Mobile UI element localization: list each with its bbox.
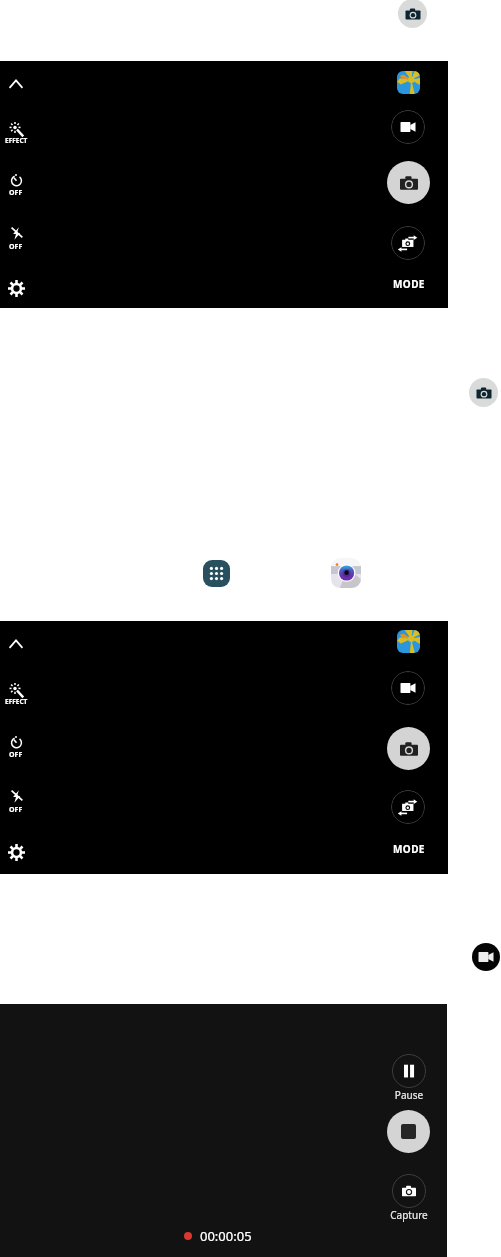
button[interactable]: Gallery [397, 630, 420, 653]
button[interactable]: Expand [3, 631, 29, 657]
button[interactable]: Flash off [9, 790, 23, 815]
button[interactable]: Switch camera [391, 790, 425, 824]
button[interactable]: Record video [391, 671, 425, 705]
button[interactable]: MODE [387, 839, 431, 859]
button[interactable]: Timer off [9, 735, 23, 760]
button[interactable]: Record video [472, 943, 500, 971]
staticText: MODE [393, 842, 425, 856]
staticText: MODE [393, 277, 425, 291]
button[interactable]: Take photo [387, 161, 430, 204]
button[interactable]: Pause [379, 1041, 439, 1101]
button[interactable]: Expand [3, 71, 29, 97]
button[interactable]: Effect [5, 122, 28, 146]
button[interactable]: Settings [3, 275, 29, 301]
button[interactable]: Switch camera [391, 226, 425, 260]
button[interactable]: Timer off [9, 173, 23, 198]
button[interactable]: Apps [203, 560, 230, 587]
staticText: 00:00:05 [200, 1227, 252, 1245]
button[interactable]: Capture [379, 1161, 439, 1221]
staticText: Capture [379, 1208, 439, 1222]
staticText: OFF [9, 188, 23, 198]
staticText: OFF [9, 242, 23, 252]
button[interactable]: Stop recording [387, 1110, 430, 1153]
button[interactable]: Settings [3, 839, 29, 865]
button[interactable]: Flash off [9, 227, 23, 252]
button[interactable]: Gallery [397, 71, 420, 94]
button[interactable]: MODE [387, 274, 431, 294]
staticText: OFF [9, 805, 23, 815]
staticText: Pause [379, 1088, 439, 1102]
staticText: EFFECT [5, 136, 28, 145]
button[interactable]: Camera [469, 378, 498, 407]
staticText: OFF [9, 750, 23, 760]
button[interactable]: Camera [398, 0, 427, 28]
button[interactable]: Camera app [331, 558, 361, 588]
staticText: EFFECT [5, 697, 28, 706]
button[interactable]: Record video [391, 110, 425, 144]
button[interactable]: Take photo [387, 727, 430, 770]
button[interactable]: Effect [5, 683, 28, 707]
